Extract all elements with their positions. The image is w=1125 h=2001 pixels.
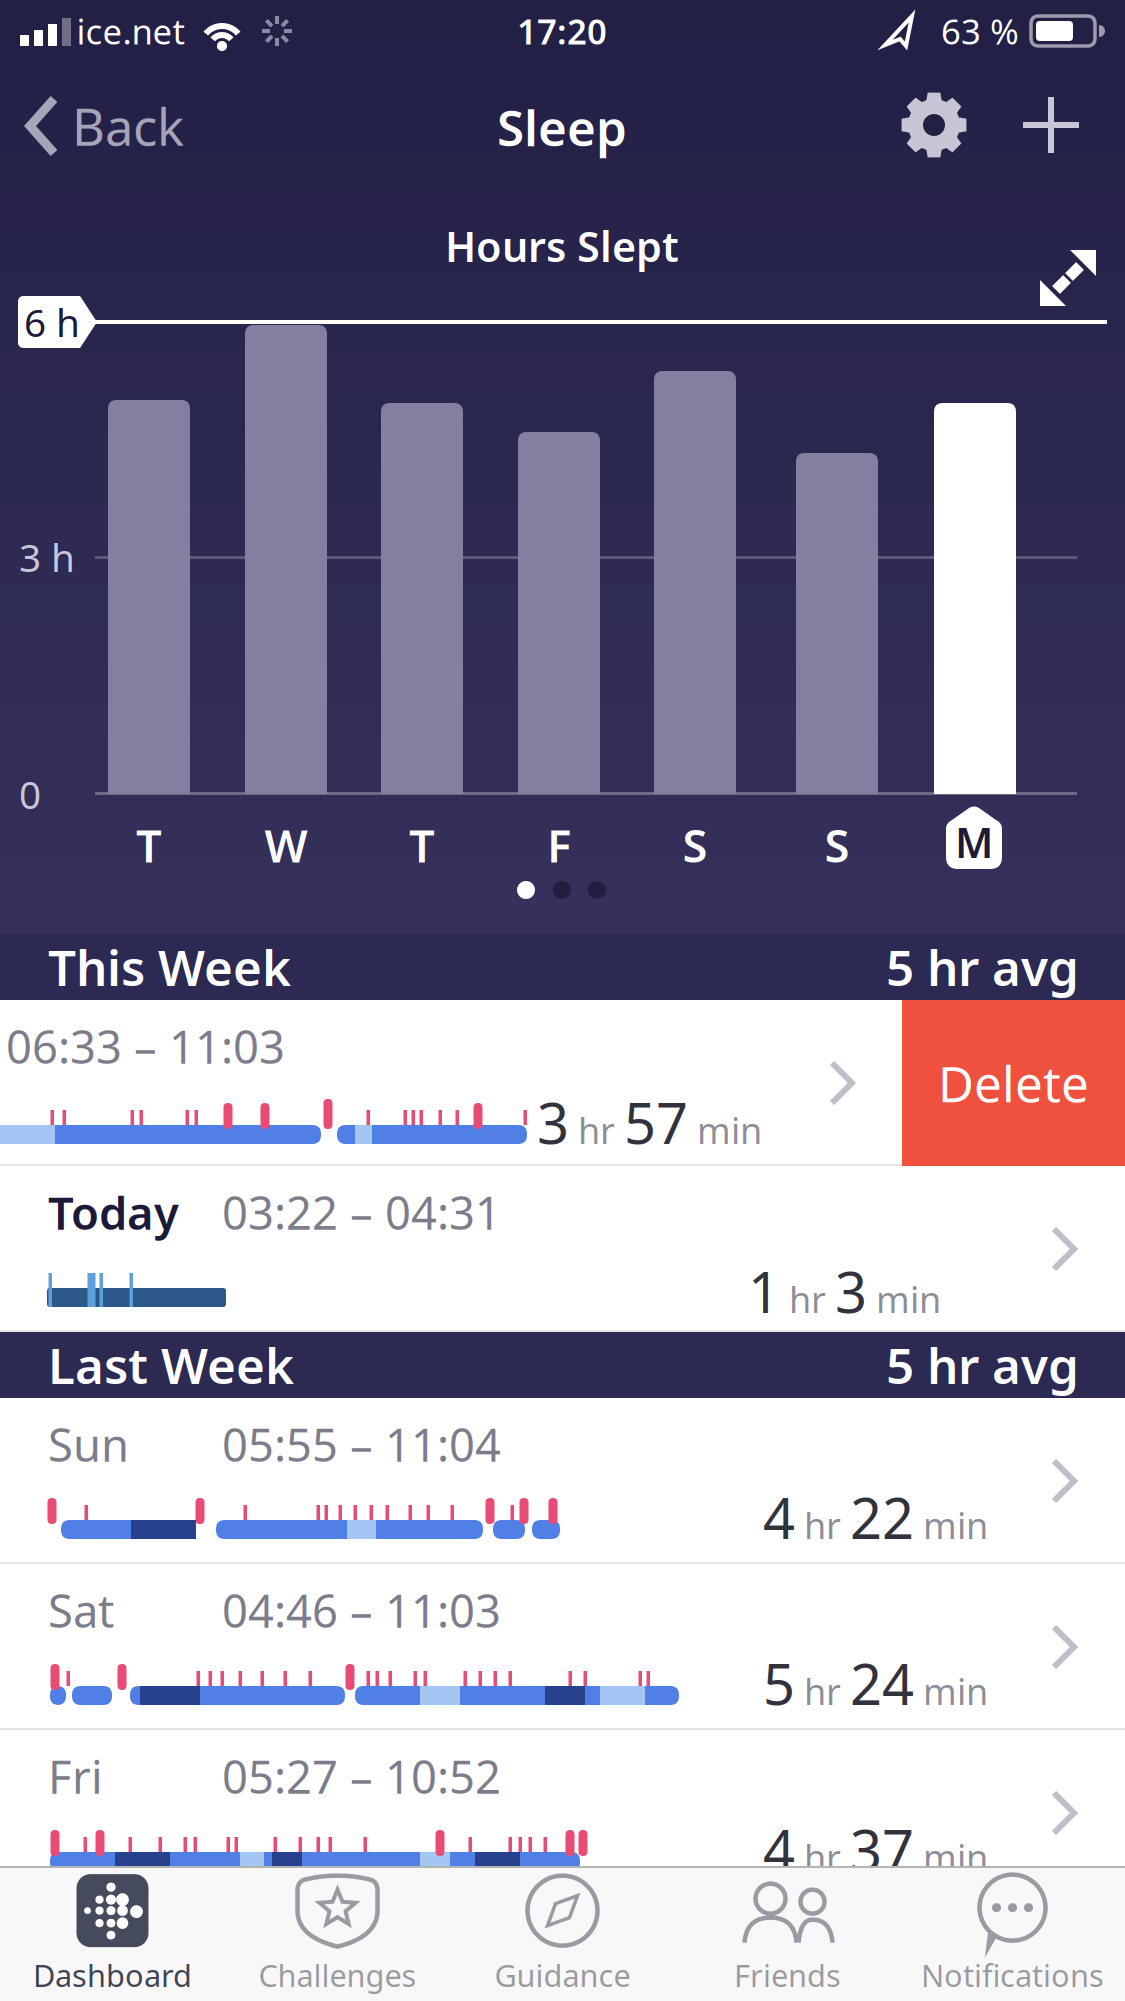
staticText: 57: [624, 1085, 688, 1159]
staticText: hr: [804, 1667, 841, 1715]
staticText: 6 h: [24, 296, 80, 348]
staticText: Dashboard: [33, 1955, 192, 1995]
staticText: S: [682, 815, 707, 875]
staticText: M: [955, 815, 993, 869]
staticText: min: [876, 1275, 941, 1323]
staticText: Fri: [48, 1746, 103, 1806]
button[interactable]: Sun: [0, 1398, 1125, 1564]
button[interactable]: Expand chart: [1040, 250, 1096, 306]
staticText: 17:20: [517, 8, 607, 54]
staticText: Friends: [734, 1955, 841, 1995]
staticText: This Week: [48, 934, 291, 999]
staticText: Sat: [48, 1580, 114, 1640]
staticText: hr: [789, 1275, 826, 1323]
staticText: Hours Slept: [445, 219, 679, 273]
staticText: hr: [804, 1833, 841, 1881]
staticText: Last Week: [48, 1332, 294, 1397]
button[interactable]: Guidance: [450, 1868, 675, 1998]
button[interactable]: Fri: [0, 1730, 1125, 1896]
button[interactable]: Delete: [902, 1000, 1125, 1166]
staticText: 5: [763, 1646, 795, 1720]
button[interactable]: Dashboard: [0, 1868, 225, 1998]
button[interactable]: Today: [0, 1166, 1125, 1332]
button[interactable]: 06:33 – 11:03: [0, 1000, 1125, 1166]
staticText: 05:27 – 10:52: [222, 1746, 501, 1806]
staticText: hr: [804, 1501, 841, 1549]
staticText: 3: [537, 1085, 569, 1159]
staticText: 63 %: [941, 8, 1019, 54]
staticText: 03:22 – 04:31: [222, 1182, 501, 1242]
staticText: Notifications: [921, 1955, 1104, 1995]
staticText: F: [547, 815, 571, 875]
staticText: 3 h: [19, 531, 75, 583]
staticText: 4: [763, 1480, 795, 1554]
staticText: Back: [72, 92, 184, 160]
staticText: T: [409, 815, 435, 875]
staticText: 5 hr avg: [886, 934, 1079, 999]
staticText: Guidance: [494, 1955, 630, 1995]
staticText: 24: [850, 1646, 914, 1720]
staticText: Today: [48, 1182, 179, 1242]
button[interactable]: Challenges: [225, 1868, 450, 1998]
button[interactable]: Back: [0, 60, 184, 192]
staticText: 04:46 – 11:03: [222, 1580, 501, 1640]
staticText: min: [923, 1501, 988, 1549]
staticText: 3: [835, 1254, 867, 1328]
staticText: S: [824, 815, 849, 875]
staticText: min: [923, 1833, 988, 1881]
staticText: Sun: [48, 1414, 129, 1474]
staticText: min: [923, 1667, 988, 1715]
staticText: 5 hr avg: [886, 1332, 1079, 1397]
staticText: 1: [748, 1254, 780, 1328]
staticText: 37: [850, 1812, 914, 1886]
button[interactable]: Notifications: [900, 1868, 1125, 1998]
staticText: T: [136, 815, 162, 875]
staticText: 4: [763, 1812, 795, 1886]
staticText: ice.net: [76, 8, 185, 54]
staticText: 22: [850, 1480, 914, 1554]
staticText: 0: [19, 768, 41, 820]
staticText: Challenges: [258, 1955, 416, 1995]
button[interactable]: Add: [1019, 93, 1083, 157]
staticText: W: [264, 815, 307, 875]
button[interactable]: Friends: [675, 1868, 900, 1998]
staticText: hr: [578, 1106, 615, 1154]
button[interactable]: Sat: [0, 1564, 1125, 1730]
staticText: min: [697, 1106, 762, 1154]
staticText: 05:55 – 11:04: [222, 1414, 501, 1474]
button[interactable]: Settings: [896, 87, 972, 163]
staticText: Sleep: [497, 94, 627, 160]
staticText: Delete: [938, 1050, 1089, 1116]
staticText: 06:33 – 11:03: [6, 1016, 285, 1076]
